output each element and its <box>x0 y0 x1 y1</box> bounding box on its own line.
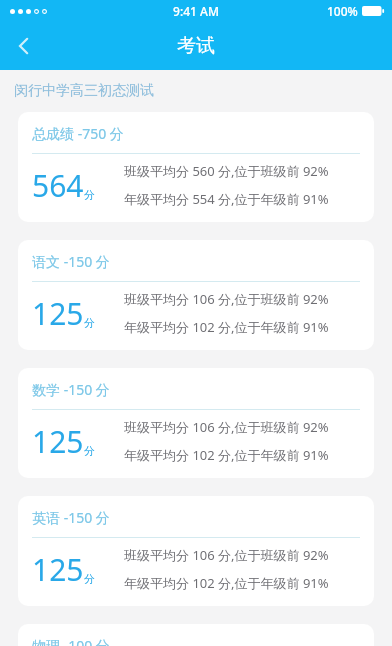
button[interactable]: 数学 -150 分 <box>18 368 374 478</box>
staticText: 分 <box>84 444 95 458</box>
staticText: 100% <box>327 3 358 19</box>
staticText: 班级平均分 106 分,位于班级前 92% <box>124 418 329 436</box>
button[interactable]: 总成绩 -750 分 <box>18 112 374 222</box>
staticText: 125 <box>32 421 84 462</box>
staticText: 年级平均分 554 分,位于年级前 91% <box>124 190 329 208</box>
staticText: 班级平均分 106 分,位于班级前 92% <box>124 546 329 564</box>
staticText: 年级平均分 102 分,位于年级前 91% <box>124 318 329 336</box>
staticText: 年级平均分 102 分,位于年级前 91% <box>124 574 329 592</box>
staticText: 闵行中学高三初态测试 <box>14 82 154 100</box>
button[interactable]: 英语 -150 分 <box>18 496 374 606</box>
button[interactable]: 语文 -150 分 <box>18 240 374 350</box>
staticText: 语文 -150 分 <box>32 252 110 271</box>
staticText: 班级平均分 106 分,位于班级前 92% <box>124 290 329 308</box>
button[interactable]: 物理 -100 分 <box>18 624 374 646</box>
staticText: 564 <box>32 165 84 206</box>
staticText: 9:41 AM <box>173 3 219 19</box>
staticText: 125 <box>32 293 84 334</box>
staticText: 英语 -150 分 <box>32 508 110 527</box>
staticText: 125 <box>32 549 84 590</box>
staticText: 分 <box>84 572 95 586</box>
staticText: 班级平均分 560 分,位于班级前 92% <box>124 162 329 180</box>
staticText: 分 <box>84 316 95 330</box>
button[interactable]: Back <box>0 22 48 70</box>
staticText: 考试 <box>177 34 215 58</box>
staticText: 总成绩 -750 分 <box>32 124 124 143</box>
staticText: 分 <box>84 188 95 202</box>
staticText: 数学 -150 分 <box>32 380 110 399</box>
staticText: 物理 -100 分 <box>32 636 110 646</box>
staticText: 年级平均分 102 分,位于年级前 91% <box>124 446 329 464</box>
